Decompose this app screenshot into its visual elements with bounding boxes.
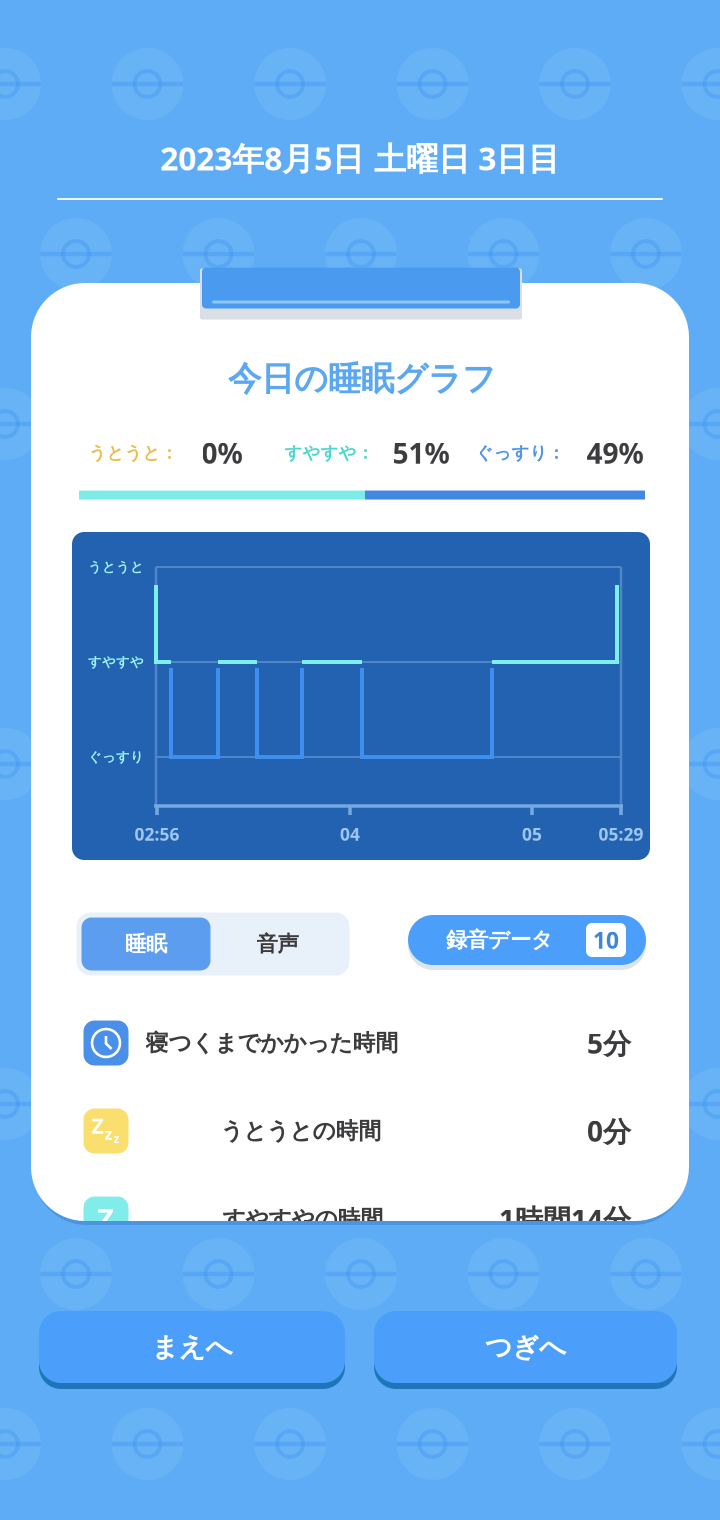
staticText: 2023年8月5日 土曜日 3日目 [160, 137, 560, 179]
staticText: 02:56 [134, 822, 179, 845]
staticText: つぎへ [485, 1331, 566, 1363]
staticText: 10 [593, 925, 619, 955]
staticText: 寝つくまでかかった時間 [145, 1029, 398, 1057]
staticText: まえへ [151, 1331, 232, 1363]
staticText: すやすや [88, 654, 144, 670]
button[interactable]: 録音データ [408, 911, 646, 969]
button[interactable]: まえへ [39, 1308, 345, 1386]
staticText: 04 [340, 822, 360, 845]
button[interactable]: 音声 [210, 917, 344, 970]
staticText: すやすや： [284, 442, 373, 464]
button[interactable]: 寝つくまでかかった時間 [31, 999, 689, 1087]
staticText: うとうと [88, 559, 144, 575]
staticText: 睡眠 [125, 931, 167, 957]
staticText: 51% [392, 434, 449, 472]
staticText: すやすやの時間 [222, 1205, 383, 1233]
button[interactable]: 睡眠 [81, 917, 210, 970]
staticText: 録音データ [446, 927, 553, 953]
staticText: ぐっすり： [475, 442, 564, 464]
staticText: 5分 [587, 1024, 631, 1062]
button[interactable]: つぎへ [374, 1308, 677, 1386]
staticText: 05:29 [598, 822, 643, 845]
staticText: 1時間14分 [499, 1200, 631, 1238]
staticText: うとうと： [88, 442, 177, 464]
button[interactable]: Z [31, 1175, 689, 1263]
staticText: z [113, 1130, 119, 1146]
staticText: うとうとの時間 [220, 1117, 381, 1145]
staticText: 音声 [256, 931, 298, 957]
staticText: 0% [201, 434, 242, 472]
staticText: ぐっすり [88, 749, 144, 765]
staticText: 49% [586, 434, 643, 472]
staticText: 0分 [587, 1112, 631, 1150]
staticText: 今日の睡眠グラフ [228, 358, 496, 399]
staticText: z [104, 1123, 112, 1144]
staticText: Z [97, 1199, 114, 1238]
button[interactable]: Z [31, 1087, 689, 1175]
staticText: Z [91, 1111, 103, 1140]
staticText: 05 [522, 822, 542, 845]
